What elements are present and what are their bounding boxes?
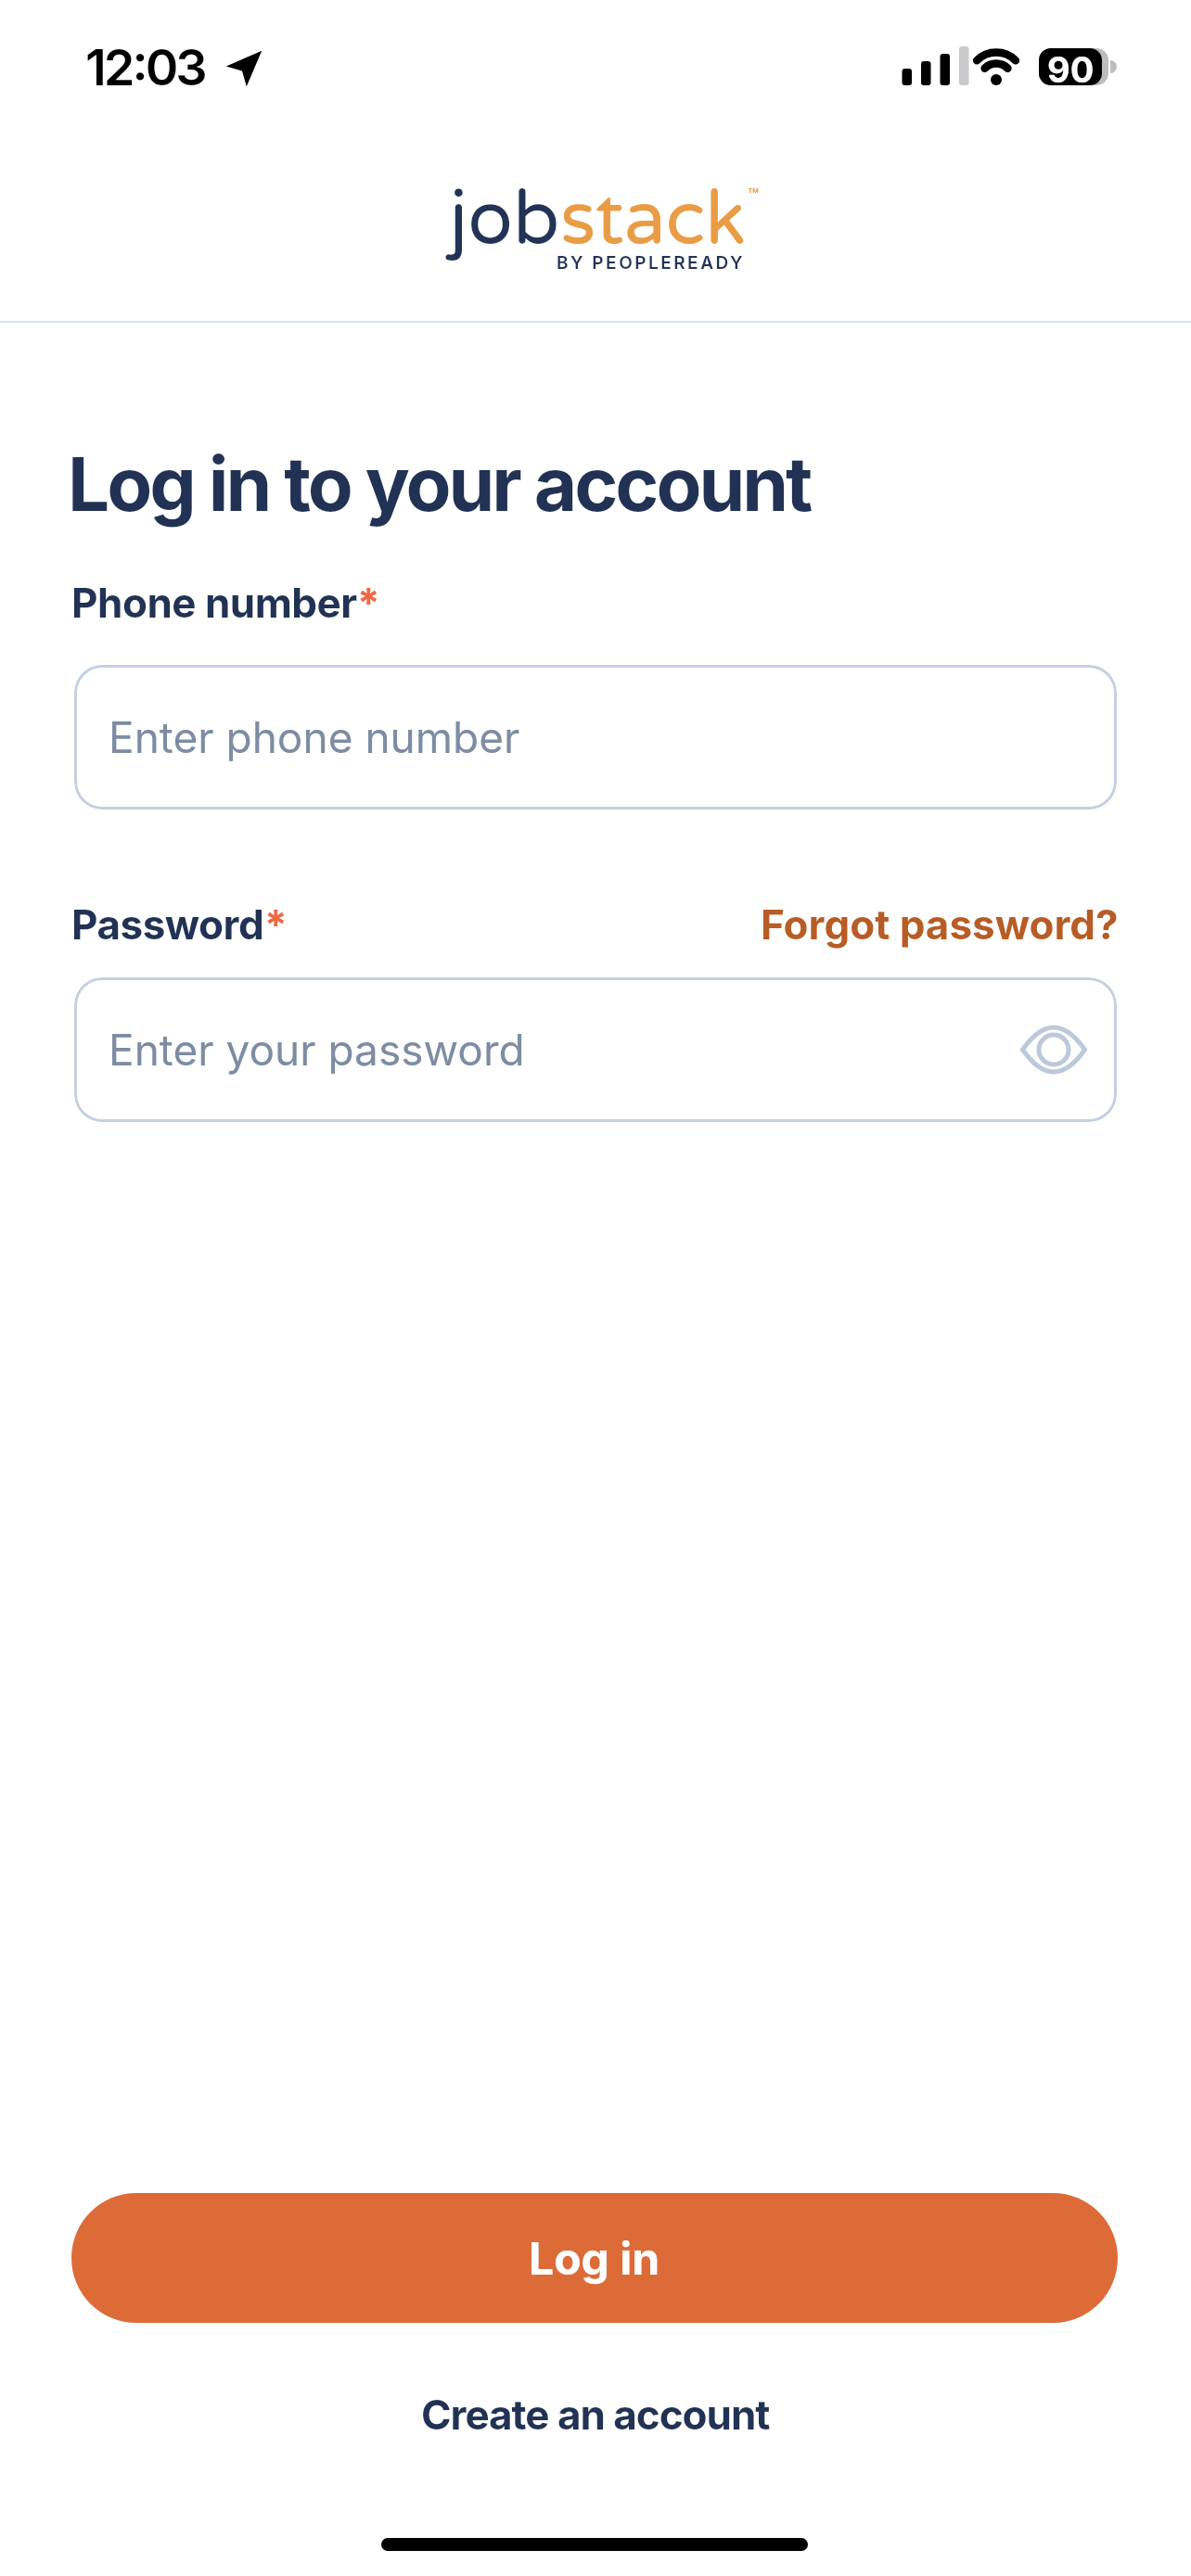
staticText: * bbox=[264, 899, 288, 949]
button[interactable]: Enter your password bbox=[74, 977, 1117, 1122]
staticText: 12:03 bbox=[85, 37, 205, 97]
staticText: Log in bbox=[529, 2231, 660, 2285]
button[interactable]: Forgot password? bbox=[761, 899, 1119, 949]
staticText: Enter phone number bbox=[109, 711, 520, 763]
staticText: Log in to your account bbox=[68, 439, 811, 529]
button[interactable]: Create an account bbox=[421, 2390, 770, 2439]
staticText: Enter your password bbox=[109, 1024, 525, 1076]
staticText: stack bbox=[560, 175, 746, 264]
staticText: Phone number bbox=[71, 578, 357, 627]
button[interactable]: Enter phone number bbox=[74, 665, 1117, 810]
button[interactable]: Log in bbox=[71, 2193, 1118, 2323]
staticText: * bbox=[357, 578, 380, 627]
staticText: BY PEOPLEREADY bbox=[557, 252, 745, 274]
staticText: job bbox=[449, 175, 560, 264]
staticText: ™ bbox=[748, 185, 760, 207]
staticText: Password bbox=[71, 899, 264, 949]
staticText: 90 bbox=[1047, 48, 1095, 85]
